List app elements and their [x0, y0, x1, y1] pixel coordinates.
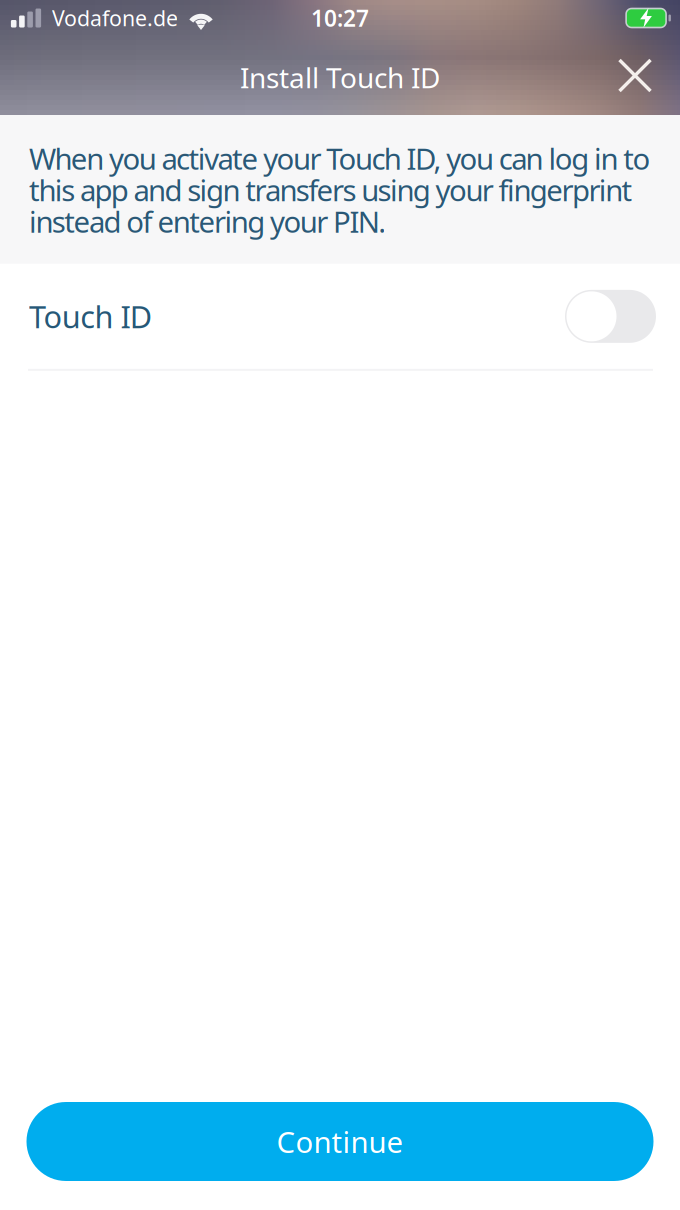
button[interactable]: Close: [604, 44, 666, 106]
button[interactable]: Continue: [26, 1102, 653, 1181]
staticText: 10:27: [311, 3, 369, 33]
staticText: Install Touch ID: [240, 59, 440, 96]
staticText: Continue: [276, 1122, 403, 1161]
button[interactable]: Touch ID: [0, 264, 680, 369]
staticText: When you activate your Touch ID, you can…: [29, 139, 651, 241]
staticText: Touch ID: [29, 296, 152, 337]
staticText: Vodafone.de: [52, 4, 178, 32]
